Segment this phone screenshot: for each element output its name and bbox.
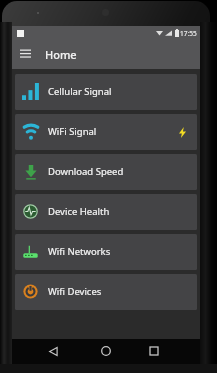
button[interactable]: Back [43, 341, 63, 361]
staticText: Download Speed [48, 165, 124, 178]
button[interactable]: Open navigation menu [12, 40, 200, 69]
staticText: WiFi Signal [48, 125, 97, 138]
button[interactable]: Cellular Signal [15, 74, 197, 110]
button[interactable]: Home [96, 341, 116, 361]
other: Open navigation menu [20, 49, 31, 60]
button[interactable]: Wifi Networks [15, 234, 197, 270]
staticText: Home [45, 47, 77, 62]
staticText: Wifi Devices [48, 285, 102, 298]
button[interactable]: Recent apps [144, 341, 164, 361]
button[interactable]: Wifi Devices [15, 274, 197, 310]
staticText: Cellular Signal [48, 85, 112, 98]
button[interactable]: WiFi Signal [15, 114, 197, 150]
staticText: 17:55 [180, 29, 197, 38]
button[interactable]: Download Speed [15, 154, 197, 190]
staticText: Wifi Networks [48, 245, 111, 258]
button[interactable]: Device Health [15, 194, 197, 230]
staticText: Device Health [48, 205, 110, 218]
